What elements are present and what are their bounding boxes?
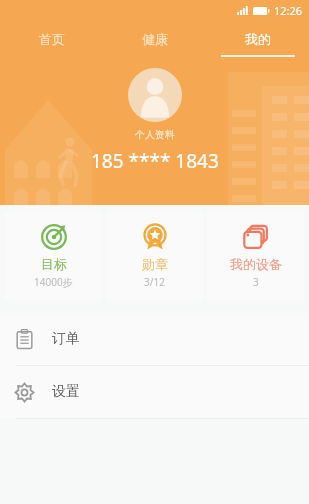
staticText: 14000步 bbox=[34, 275, 73, 289]
staticText: 个人资料 bbox=[135, 128, 175, 141]
button[interactable]: 首页 bbox=[0, 20, 103, 58]
staticText: 我的设备 bbox=[230, 256, 282, 272]
staticText: 健康 bbox=[142, 31, 168, 47]
staticText: 12:26 bbox=[274, 3, 303, 18]
staticText: 3/12 bbox=[144, 275, 165, 289]
staticText: 3 bbox=[253, 275, 259, 289]
button[interactable]: 勋章 bbox=[106, 211, 203, 301]
staticText: 订单 bbox=[52, 330, 80, 348]
button[interactable]: 设置 bbox=[0, 366, 309, 418]
staticText: 勋章 bbox=[142, 256, 168, 272]
staticText: 185 **** 1843 bbox=[91, 148, 219, 174]
button[interactable]: Avatar bbox=[128, 68, 182, 122]
button[interactable]: 健康 bbox=[103, 20, 206, 58]
button[interactable]: 订单 bbox=[0, 313, 309, 365]
button[interactable]: 我的 bbox=[206, 20, 309, 58]
button[interactable]: 我的设备 bbox=[207, 211, 304, 301]
staticText: 首页 bbox=[39, 31, 65, 47]
staticText: 目标 bbox=[41, 256, 67, 272]
staticText: 我的 bbox=[245, 31, 271, 47]
button[interactable]: 目标 bbox=[5, 211, 102, 301]
staticText: 设置 bbox=[52, 383, 80, 401]
